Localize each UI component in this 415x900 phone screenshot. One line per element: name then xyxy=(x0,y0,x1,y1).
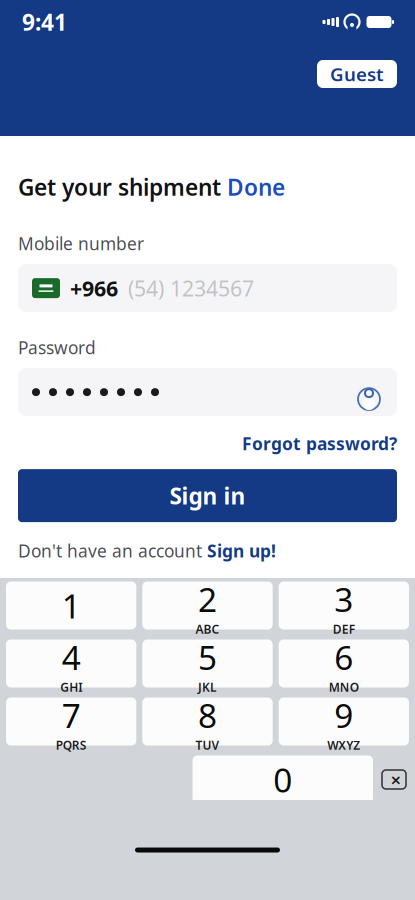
staticText: Mobile number xyxy=(18,232,144,255)
staticText: Don't have an account xyxy=(18,539,207,562)
button[interactable]: Forgot password? xyxy=(242,432,397,455)
staticText: 5 xyxy=(198,635,217,679)
staticText: Sign up! xyxy=(207,539,276,562)
staticText: Get your shipment xyxy=(18,172,227,202)
button[interactable]: 1 xyxy=(6,581,136,629)
staticText: 1 xyxy=(62,583,81,628)
staticText: 0 xyxy=(273,757,292,802)
staticText: 3 xyxy=(334,577,353,621)
staticText: 2 xyxy=(198,577,217,621)
staticText: JKL xyxy=(198,679,217,695)
button[interactable]: Sign up! xyxy=(207,539,276,562)
staticText: 9 xyxy=(334,693,353,737)
button[interactable] xyxy=(18,368,397,416)
staticText: Password xyxy=(18,336,96,359)
button[interactable]: +966 xyxy=(18,264,397,312)
button[interactable]: 2 xyxy=(142,581,273,629)
staticText: × xyxy=(390,767,401,792)
staticText: 9:41 xyxy=(22,7,67,37)
staticText: Sign in xyxy=(169,481,245,511)
staticText: +966 xyxy=(70,274,118,302)
button[interactable]: 0 xyxy=(192,755,373,803)
button[interactable]: Delete xyxy=(379,755,409,803)
staticText: MNO xyxy=(329,679,359,695)
staticText: 7 xyxy=(62,693,81,737)
staticText: TUV xyxy=(195,737,219,753)
button[interactable]: 6 xyxy=(279,639,409,687)
staticText: Forgot password? xyxy=(242,432,397,455)
button[interactable]: 8 xyxy=(142,697,273,745)
staticText: ABC xyxy=(195,621,219,637)
button[interactable]: Sign in xyxy=(18,469,397,522)
button[interactable]: 4 xyxy=(6,639,136,687)
staticText: Done xyxy=(227,172,285,202)
staticText: WXYZ xyxy=(327,737,360,753)
staticText: (54) 1234567 xyxy=(128,274,254,302)
button[interactable]: 7 xyxy=(6,697,136,745)
staticText: 8 xyxy=(198,693,217,737)
staticText: 6 xyxy=(334,635,353,679)
staticText: PQRS xyxy=(56,737,87,753)
button[interactable]: 3 xyxy=(279,581,409,629)
staticText: GHI xyxy=(60,679,82,695)
staticText: DEF xyxy=(333,621,355,637)
staticText: 4 xyxy=(62,635,81,679)
button[interactable]: 9 xyxy=(279,697,409,745)
staticText: Guest xyxy=(330,62,384,86)
button[interactable]: 5 xyxy=(142,639,273,687)
button[interactable]: Guest xyxy=(317,60,397,88)
